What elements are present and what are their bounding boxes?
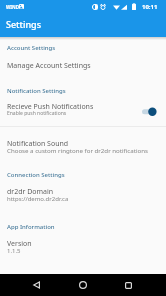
button[interactable]: Version bbox=[0, 237, 166, 259]
staticText: https://demo.dr2dr.ca bbox=[7, 195, 69, 203]
button[interactable]: Notification Sound bbox=[0, 137, 166, 159]
button[interactable]: Manage Account Settings bbox=[0, 58, 166, 74]
staticText: Recieve Push Notifications bbox=[7, 102, 94, 112]
staticText: WIND bbox=[6, 4, 20, 10]
staticText: Account Settings bbox=[7, 44, 56, 52]
staticText: dr2dr Domain bbox=[7, 187, 54, 197]
button[interactable]: Back bbox=[25, 274, 47, 296]
staticText: Notification Settings bbox=[7, 87, 66, 95]
staticText: 1.1.5 bbox=[7, 247, 21, 255]
button[interactable]: Home bbox=[72, 274, 94, 296]
staticText: 10:11 bbox=[142, 3, 158, 11]
staticText: Version bbox=[7, 239, 32, 249]
button[interactable]: Recieve Push Notifications bbox=[0, 100, 166, 122]
staticText: Notification Sound bbox=[7, 139, 69, 149]
button[interactable]: Recents bbox=[117, 274, 139, 296]
button[interactable]: dr2dr Domain bbox=[0, 185, 166, 207]
staticText: Enable push notifications bbox=[7, 110, 67, 117]
staticText: Settings bbox=[6, 18, 42, 30]
staticText: Choose a custom ringtone for dr2dr notif… bbox=[7, 146, 148, 154]
staticText: Connection Settings bbox=[7, 171, 65, 179]
staticText: Manage Account Settings bbox=[7, 61, 91, 71]
staticText: App Information bbox=[7, 223, 55, 231]
button[interactable]: Toggle receive push notifications bbox=[138, 104, 160, 120]
